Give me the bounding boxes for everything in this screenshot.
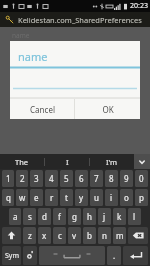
button[interactable]: j — [98, 208, 111, 225]
button[interactable]: 9 — [120, 170, 133, 187]
staticText: h — [87, 211, 92, 222]
staticText: x — [42, 230, 47, 241]
staticText: Kelidestan.com_SharedPreferences — [18, 15, 142, 25]
button[interactable]: . — [107, 246, 121, 265]
staticText: 4 — [49, 173, 54, 184]
staticText: Sym — [5, 251, 19, 261]
staticText: 1 — [6, 173, 11, 184]
other: App icon — [5, 15, 14, 24]
staticText: d — [42, 211, 47, 222]
staticText: The — [15, 157, 29, 167]
button[interactable]: 2 — [16, 170, 28, 187]
button[interactable]: s — [23, 208, 36, 225]
staticText: e — [34, 192, 39, 203]
staticText: y — [79, 192, 84, 203]
button[interactable]: More suggestions — [134, 154, 150, 169]
button[interactable]: 1 — [2, 170, 14, 187]
staticText: . — [113, 250, 116, 261]
button[interactable]: Space — [39, 246, 105, 265]
staticText: 6 — [79, 173, 84, 184]
staticText: b — [87, 230, 92, 241]
staticText: k — [117, 211, 122, 222]
staticText: 9 — [124, 173, 129, 184]
button[interactable]: m — [113, 227, 126, 244]
button[interactable]: Sym — [2, 246, 21, 265]
button[interactable]: Shift — [2, 227, 21, 244]
button[interactable]: 5 — [60, 170, 73, 187]
staticText: I'm — [106, 157, 118, 167]
button[interactable]: q — [2, 189, 14, 206]
button[interactable]: f — [53, 208, 66, 225]
button[interactable]: 6 — [75, 170, 88, 187]
staticText: name — [12, 31, 30, 40]
staticText: 7 — [94, 173, 99, 184]
staticText: t — [65, 192, 68, 203]
button[interactable]: w — [16, 189, 28, 206]
staticText: 3 — [34, 173, 39, 184]
button[interactable]: n — [98, 227, 111, 244]
staticText: n — [102, 230, 107, 241]
button[interactable]: 0 — [135, 170, 148, 187]
staticText: w — [19, 192, 26, 203]
button[interactable]: 8 — [105, 170, 118, 187]
staticText: u — [94, 192, 99, 203]
staticText: r — [50, 192, 54, 203]
staticText: o — [124, 192, 129, 203]
button[interactable]: r — [45, 189, 58, 206]
button[interactable]: 4 — [45, 170, 58, 187]
staticText: z — [28, 230, 32, 241]
button[interactable]: Enter — [123, 246, 148, 265]
button[interactable]: OK — [75, 99, 140, 119]
button[interactable]: 3 — [30, 170, 43, 187]
staticText: g — [72, 211, 77, 222]
staticText: q — [6, 192, 11, 203]
button[interactable]: 7 — [90, 170, 103, 187]
staticText: f — [58, 211, 61, 222]
button[interactable]: l — [128, 208, 141, 225]
staticText: i — [110, 192, 113, 203]
button[interactable]: p — [135, 189, 148, 206]
button[interactable]: Backspace — [128, 227, 148, 244]
button[interactable]: I'm — [90, 154, 134, 169]
button[interactable]: Cancel — [10, 99, 74, 119]
button[interactable]: a — [9, 208, 21, 225]
staticText: m — [116, 230, 124, 241]
staticText: Cancel — [30, 104, 55, 115]
staticText: 5 — [64, 173, 69, 184]
staticText: l — [133, 211, 136, 222]
staticText: 20:23 — [130, 1, 148, 11]
button[interactable]: t — [60, 189, 73, 206]
button[interactable]: y — [75, 189, 88, 206]
button[interactable]: e — [30, 189, 43, 206]
staticText: name — [18, 49, 48, 64]
button[interactable]: x — [38, 227, 51, 244]
button[interactable]: h — [83, 208, 96, 225]
button[interactable]: name — [18, 47, 140, 66]
staticText: 0 — [139, 173, 144, 184]
button[interactable]: u — [90, 189, 103, 206]
button[interactable]: d — [38, 208, 51, 225]
staticText: p — [139, 192, 144, 203]
button[interactable]: o — [120, 189, 133, 206]
button[interactable]: v — [68, 227, 81, 244]
staticText: a — [13, 211, 18, 222]
button[interactable]: I — [45, 154, 89, 169]
button[interactable]: c — [53, 227, 66, 244]
staticText: 8 — [109, 173, 114, 184]
button[interactable]: z — [23, 227, 36, 244]
button[interactable]: g — [68, 208, 81, 225]
button[interactable]: b — [83, 227, 96, 244]
button[interactable]: Input settings — [23, 246, 37, 265]
button[interactable]: The — [0, 154, 44, 169]
staticText: I — [66, 157, 69, 167]
button[interactable]: k — [113, 208, 126, 225]
staticText: s — [28, 211, 32, 222]
staticText: c — [58, 230, 62, 241]
staticText: j — [103, 211, 106, 222]
staticText: OK — [102, 104, 114, 115]
button[interactable]: i — [105, 189, 118, 206]
staticText: v — [72, 230, 77, 241]
staticText: 2 — [20, 173, 25, 184]
